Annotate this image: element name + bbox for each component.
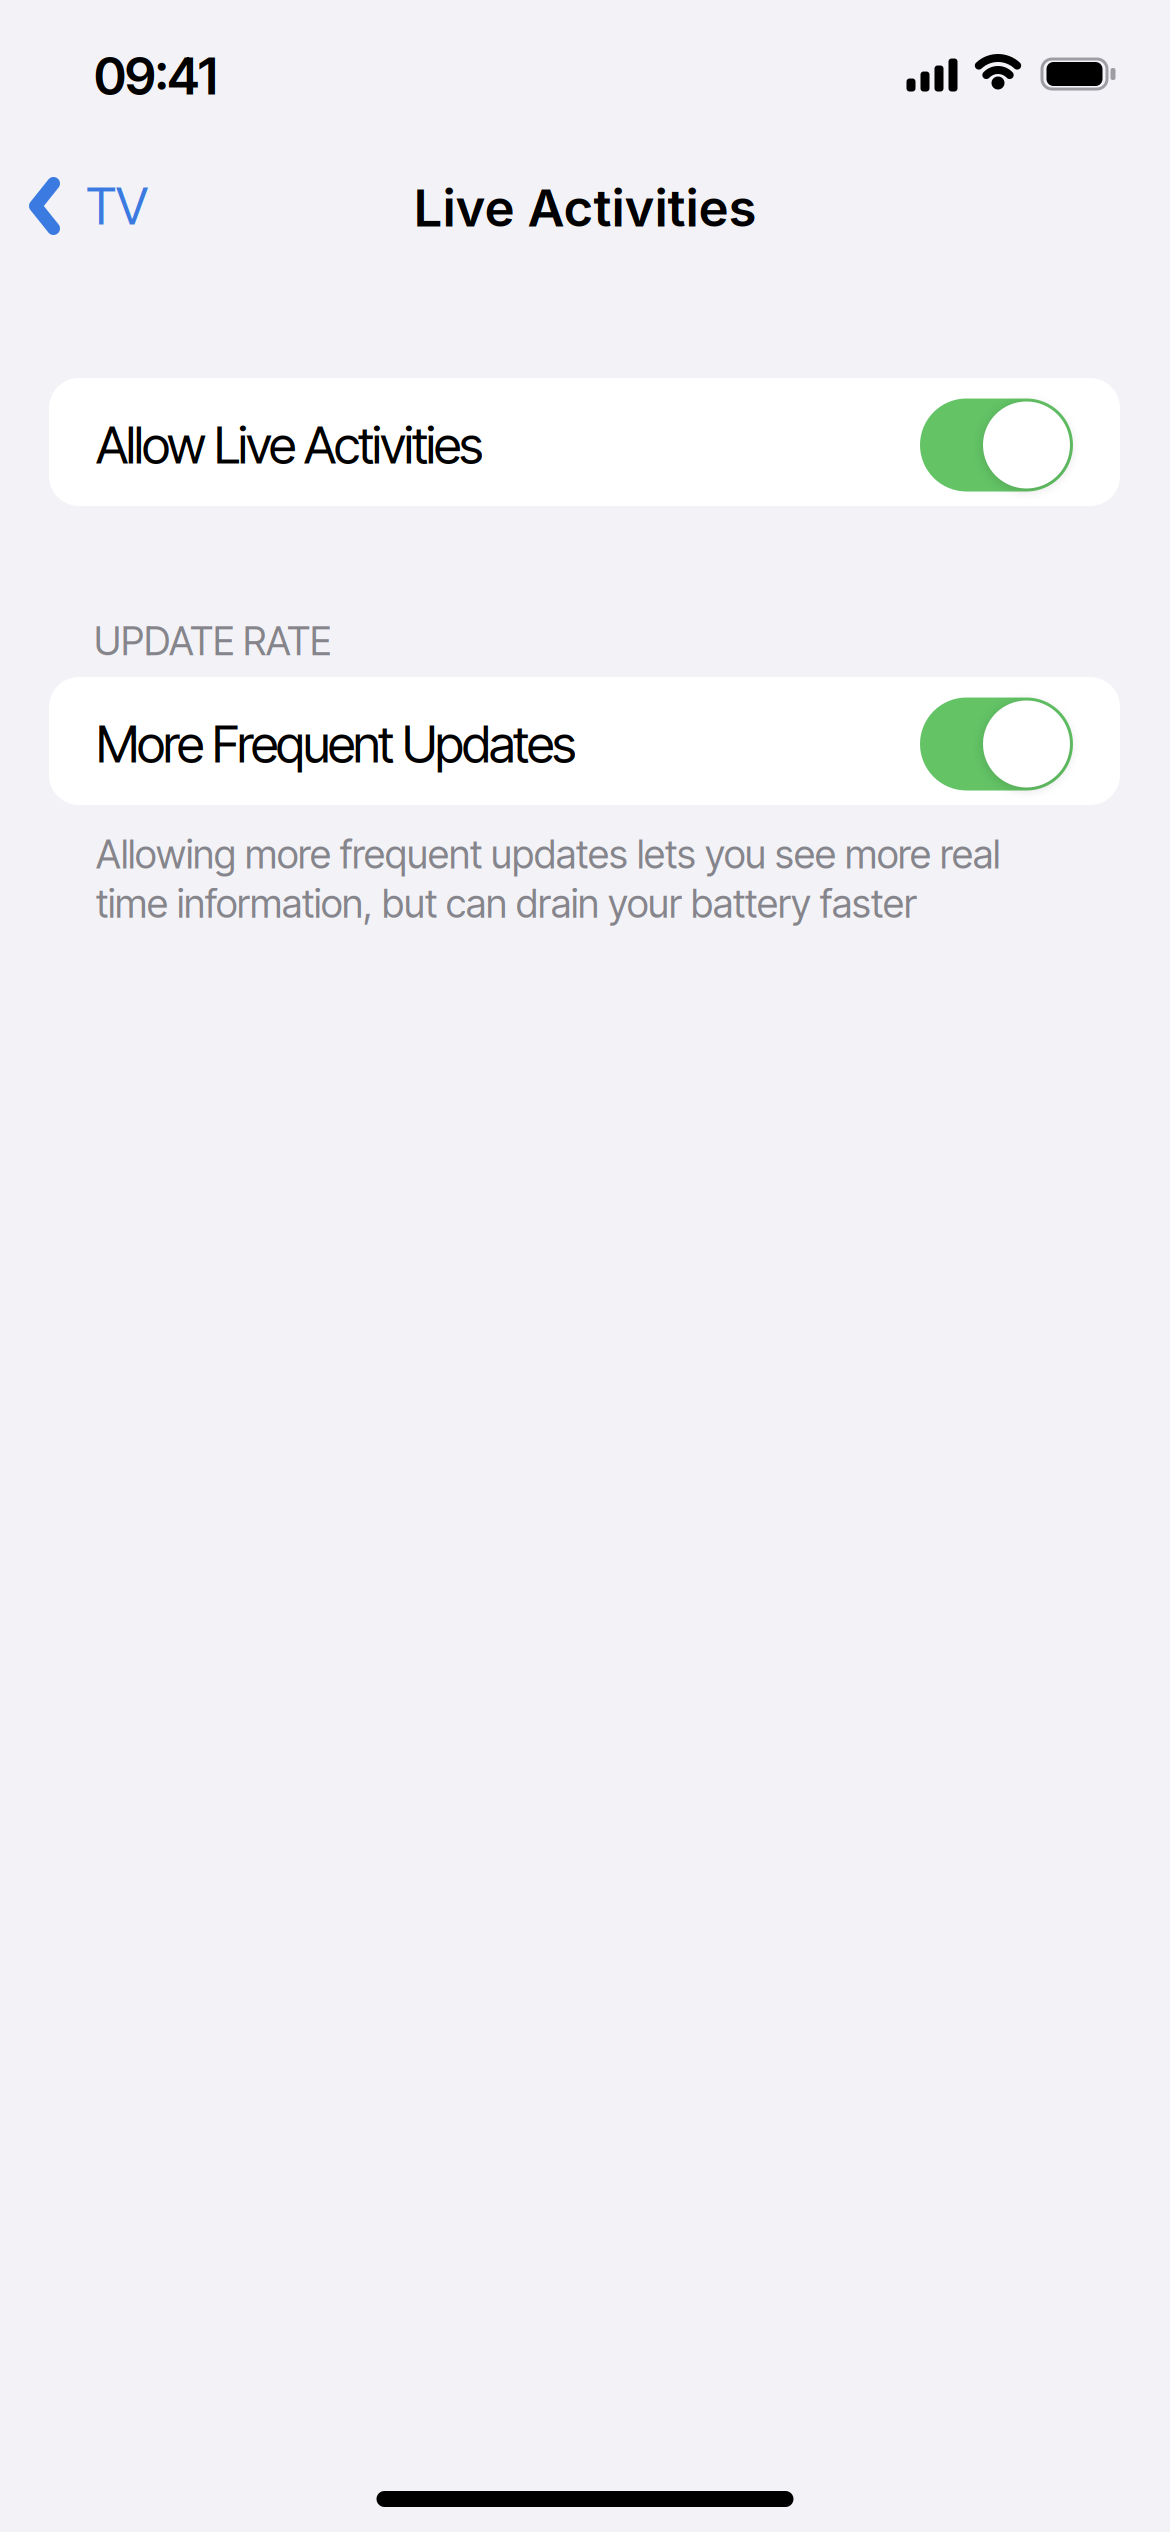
staticText: Allowing more frequent updates lets you … [96,831,1000,927]
staticText: Live Activities [413,177,756,239]
button[interactable]: TV [29,175,148,237]
staticText: Allow Live Activities [96,414,483,476]
staticText: TV [86,175,148,237]
staticText: More Frequent Updates [96,713,576,775]
staticText: UPDATE RATE [94,617,331,665]
staticText: 09:41 [94,45,218,107]
button[interactable]: Allow Live Activities [920,398,1073,491]
button[interactable]: More Frequent Updates [920,697,1073,790]
